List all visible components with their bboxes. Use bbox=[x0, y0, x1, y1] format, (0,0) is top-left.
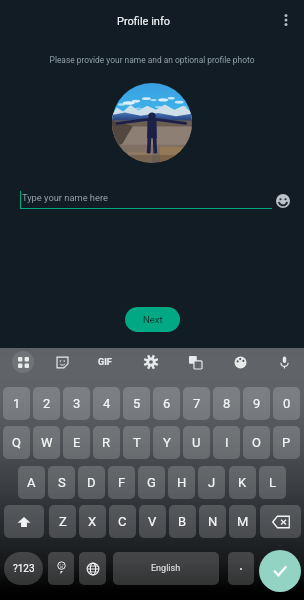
staticText: J bbox=[208, 475, 216, 490]
button[interactable]: Z bbox=[49, 505, 76, 538]
staticText: M bbox=[237, 514, 249, 529]
button[interactable]: O bbox=[243, 426, 270, 459]
button[interactable]: 4 bbox=[93, 387, 120, 420]
button[interactable]: G bbox=[138, 466, 165, 499]
button[interactable]: V bbox=[139, 505, 166, 538]
button[interactable]: 5 bbox=[123, 387, 150, 420]
button[interactable]: M bbox=[229, 505, 256, 538]
staticText: P bbox=[282, 435, 291, 450]
staticText: 7 bbox=[193, 396, 201, 411]
staticText: Y bbox=[163, 435, 171, 450]
staticText: 2 bbox=[43, 396, 51, 411]
button[interactable]: 3 bbox=[63, 387, 90, 420]
button[interactable]: 8 bbox=[213, 387, 240, 420]
staticText: 6 bbox=[163, 396, 171, 411]
button[interactable]: F bbox=[108, 466, 135, 499]
button[interactable]: K bbox=[229, 466, 256, 499]
button[interactable]: P bbox=[273, 426, 300, 459]
staticText: L bbox=[269, 475, 277, 490]
staticText: ?123 bbox=[13, 563, 35, 575]
staticText: X bbox=[88, 514, 97, 529]
staticText: 5 bbox=[133, 396, 141, 411]
button[interactable]: Change language bbox=[79, 552, 106, 585]
staticText: T bbox=[133, 435, 141, 450]
button[interactable]: Settings bbox=[140, 351, 162, 373]
staticText: C bbox=[118, 514, 127, 529]
button[interactable]: 0 bbox=[273, 387, 300, 420]
button[interactable]: Backspace bbox=[260, 505, 301, 538]
button[interactable]: X bbox=[79, 505, 106, 538]
button[interactable]: English bbox=[113, 552, 219, 585]
button[interactable]: More options bbox=[272, 6, 300, 34]
staticText: V bbox=[148, 514, 157, 529]
staticText: B bbox=[178, 514, 187, 529]
button[interactable]: Emoji bbox=[48, 552, 74, 585]
button[interactable]: U bbox=[183, 426, 210, 459]
button[interactable]: H bbox=[168, 466, 195, 499]
button[interactable]: N bbox=[199, 505, 226, 538]
staticText: K bbox=[238, 475, 247, 490]
button[interactable]: E bbox=[63, 426, 90, 459]
button[interactable]: GIF bbox=[94, 351, 116, 373]
button[interactable]: Translate bbox=[184, 351, 206, 373]
button[interactable]: Voice input bbox=[273, 351, 295, 373]
staticText: 3 bbox=[73, 396, 81, 411]
staticText: S bbox=[58, 475, 66, 490]
button[interactable]: Switch keyboard bbox=[12, 351, 34, 373]
button[interactable]: L bbox=[259, 466, 286, 499]
button[interactable]: Next bbox=[125, 307, 180, 332]
button[interactable]: Stickers bbox=[51, 351, 73, 373]
button[interactable]: ?123 bbox=[4, 552, 43, 585]
staticText: N bbox=[208, 514, 218, 529]
staticText: Profile info bbox=[117, 15, 171, 28]
staticText: W bbox=[41, 435, 53, 450]
button[interactable]: Y bbox=[153, 426, 180, 459]
button[interactable]: D bbox=[78, 466, 105, 499]
staticText: 0 bbox=[283, 396, 291, 411]
staticText: R bbox=[102, 435, 111, 450]
staticText: GIF bbox=[98, 357, 112, 368]
staticText: U bbox=[192, 435, 201, 450]
button[interactable]: B bbox=[169, 505, 196, 538]
button[interactable]: 2 bbox=[33, 387, 60, 420]
button[interactable]: 9 bbox=[243, 387, 270, 420]
staticText: D bbox=[87, 475, 96, 490]
staticText: O bbox=[252, 435, 261, 450]
button[interactable]: A bbox=[18, 466, 45, 499]
button[interactable]: J bbox=[198, 466, 225, 499]
staticText: A bbox=[27, 475, 36, 490]
button[interactable]: S bbox=[48, 466, 75, 499]
button[interactable]: Period bbox=[228, 552, 254, 585]
button[interactable]: Themes bbox=[229, 351, 251, 373]
button[interactable]: I bbox=[213, 426, 240, 459]
button[interactable]: Q bbox=[3, 426, 30, 459]
staticText: Q bbox=[12, 435, 21, 450]
button[interactable]: T bbox=[123, 426, 150, 459]
staticText: English bbox=[151, 563, 181, 574]
button[interactable]: Emoji bbox=[272, 190, 293, 211]
staticText: 1 bbox=[13, 396, 21, 411]
button[interactable]: W bbox=[33, 426, 60, 459]
staticText: 8 bbox=[223, 396, 231, 411]
staticText: Please provide your name and an optional… bbox=[18, 55, 286, 65]
button[interactable]: Add profile photo bbox=[112, 83, 192, 163]
staticText: I bbox=[225, 435, 229, 450]
button[interactable]: 7 bbox=[183, 387, 210, 420]
button[interactable]: 6 bbox=[153, 387, 180, 420]
staticText: 4 bbox=[103, 396, 111, 411]
button[interactable]: Enter bbox=[259, 550, 301, 592]
staticText: 9 bbox=[253, 396, 261, 411]
staticText: G bbox=[147, 475, 156, 490]
button[interactable]: R bbox=[93, 426, 120, 459]
staticText: Z bbox=[59, 514, 67, 529]
button[interactable]: C bbox=[109, 505, 136, 538]
staticText: Type your name here bbox=[22, 192, 108, 203]
staticText: F bbox=[118, 475, 126, 490]
staticText: Next bbox=[143, 314, 163, 325]
staticText: H bbox=[177, 475, 187, 490]
staticText: E bbox=[73, 435, 81, 450]
button[interactable]: Shift bbox=[4, 505, 44, 538]
button[interactable]: 1 bbox=[3, 387, 30, 420]
